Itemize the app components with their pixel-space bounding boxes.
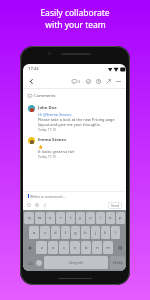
- button[interactable]: More options: [116, 79, 121, 84]
- button[interactable]: n: [92, 241, 102, 254]
- staticText: Comments: [34, 93, 56, 99]
- staticText: Today 17:10: [38, 128, 56, 132]
- staticText: 123: [27, 261, 33, 265]
- button[interactable]: r: [56, 212, 65, 224]
- button[interactable]: Mention: [35, 203, 39, 207]
- staticText: k: [104, 230, 107, 236]
- staticText: tiếng việt: [69, 261, 83, 265]
- staticText: u: [89, 215, 92, 221]
- button[interactable]: l: [111, 226, 120, 239]
- button[interactable]: Emoji: [36, 260, 42, 266]
- staticText: m: [106, 245, 110, 251]
- button[interactable]: Share: [106, 79, 111, 84]
- staticText: 👍: [38, 144, 43, 149]
- button[interactable]: Attach file: [43, 203, 47, 207]
- button[interactable]: k: [101, 226, 110, 239]
- button[interactable]: e: [46, 212, 55, 224]
- staticText: Please take a look at the new Pricing pa…: [38, 117, 115, 127]
- staticText: kế tiếp: [113, 261, 123, 265]
- button[interactable]: h: [81, 226, 90, 239]
- button[interactable]: o: [106, 212, 115, 224]
- staticText: x: [52, 245, 55, 251]
- staticText: o: [109, 215, 112, 221]
- staticText: j: [95, 230, 97, 236]
- button[interactable]: d: [51, 226, 60, 239]
- staticText: d: [54, 230, 57, 236]
- staticText: r: [60, 215, 62, 221]
- button[interactable]: i: [96, 212, 105, 224]
- staticText: John Doe: [38, 105, 57, 111]
- button[interactable]: tiếng việt: [44, 256, 108, 269]
- button[interactable]: Tasks: [86, 79, 91, 84]
- staticText: Today 17:15: [38, 155, 56, 159]
- staticText: p: [119, 215, 122, 221]
- button[interactable]: c: [59, 241, 69, 254]
- button[interactable]: u: [86, 212, 95, 224]
- button[interactable]: f: [61, 226, 70, 239]
- button[interactable]: p: [116, 212, 125, 224]
- button[interactable]: a: [29, 226, 39, 239]
- staticText: v: [74, 245, 77, 251]
- button[interactable]: g: [71, 226, 80, 239]
- button[interactable]: Emma Stones: [23, 134, 126, 161]
- button[interactable]: z: [36, 241, 47, 254]
- staticText: h: [84, 230, 87, 236]
- staticText: a: [33, 230, 36, 236]
- button[interactable]: Emoji: [27, 203, 31, 207]
- staticText: with your team: [45, 19, 106, 31]
- staticText: 17:22: [28, 66, 39, 72]
- staticText: 3: [78, 79, 81, 84]
- button[interactable]: s: [40, 226, 50, 239]
- staticText: y: [79, 215, 82, 221]
- button[interactable]: 123: [24, 256, 35, 269]
- staticText: Easily collaborate: [40, 7, 110, 19]
- button[interactable]: t: [66, 212, 75, 224]
- staticText: Send: [111, 203, 119, 208]
- button[interactable]: Shift: [24, 241, 35, 254]
- staticText: i: [100, 215, 102, 221]
- button[interactable]: q: [24, 212, 34, 224]
- staticText: e: [49, 215, 52, 221]
- button[interactable]: kế tiếp: [110, 256, 125, 269]
- button[interactable]: Comments: [72, 79, 81, 84]
- button[interactable]: x: [48, 241, 58, 254]
- staticText: w: [38, 215, 42, 221]
- button[interactable]: John Doe: [23, 102, 126, 134]
- staticText: t: [70, 215, 72, 221]
- button[interactable]: History: [96, 79, 101, 84]
- button[interactable]: v: [70, 241, 80, 254]
- staticText: It looks great so far!: [38, 149, 75, 154]
- button[interactable]: y: [76, 212, 85, 224]
- staticText: g: [74, 230, 77, 236]
- staticText: Hi @Emma Stones,: [38, 112, 73, 117]
- button[interactable]: j: [91, 226, 100, 239]
- button[interactable]: m: [103, 241, 113, 254]
- button[interactable]: Backspace: [114, 241, 125, 254]
- staticText: f: [65, 230, 67, 236]
- staticText: b: [85, 245, 88, 251]
- staticText: z: [41, 245, 43, 251]
- button[interactable]: b: [81, 241, 91, 254]
- staticText: q: [28, 215, 31, 221]
- staticText: c: [63, 245, 66, 251]
- button[interactable]: Send: [108, 202, 122, 209]
- staticText: l: [115, 230, 117, 236]
- button[interactable]: Back: [27, 77, 35, 85]
- staticText: Write a comment...: [30, 194, 66, 199]
- staticText: s: [44, 230, 47, 236]
- staticText: Emma Stones: [38, 137, 67, 143]
- button[interactable]: w: [35, 212, 45, 224]
- staticText: n: [96, 245, 99, 251]
